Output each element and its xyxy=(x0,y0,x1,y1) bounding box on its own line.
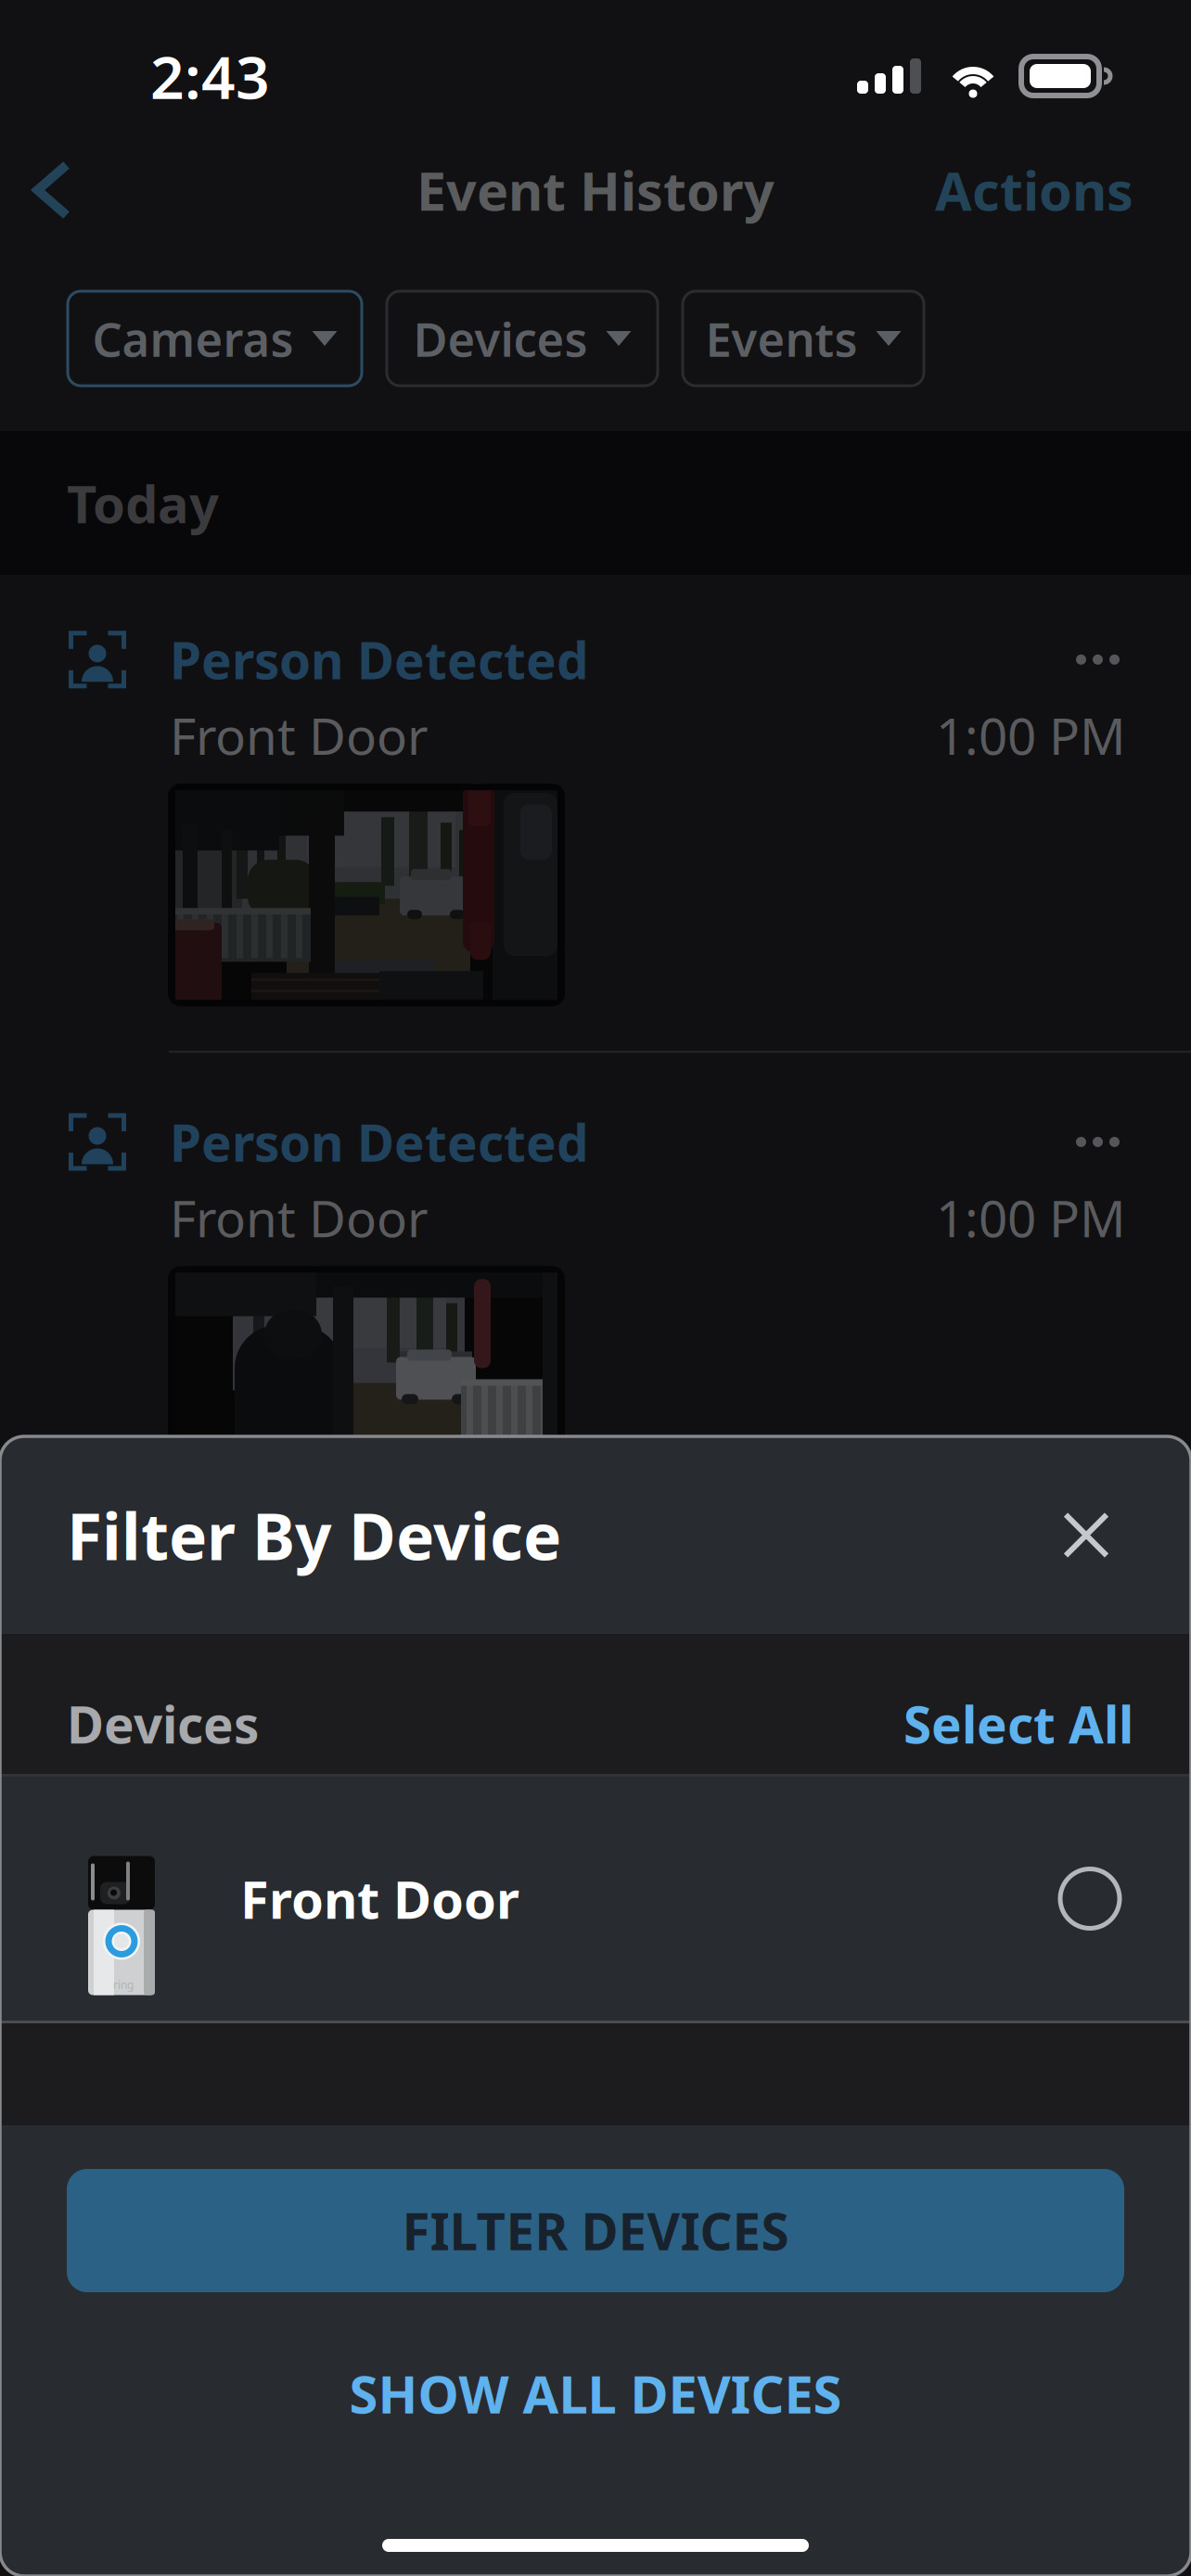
staticText: Today xyxy=(67,469,219,538)
staticText: Actions xyxy=(935,155,1133,225)
staticText: Devices xyxy=(67,1690,259,1757)
button[interactable]: SHOW ALL DEVICES xyxy=(349,2343,842,2443)
staticText: Filter By Device xyxy=(67,1492,561,1578)
staticText: Devices xyxy=(413,307,588,370)
staticText: Event History xyxy=(416,155,775,225)
staticText: Person Detected xyxy=(170,626,589,693)
staticText: Person Detected xyxy=(170,1108,589,1176)
staticText: 1:00 PM xyxy=(936,702,1126,769)
button[interactable]: Close xyxy=(1035,1484,1137,1586)
button[interactable]: Devices xyxy=(387,291,658,386)
staticText: Events xyxy=(705,307,858,370)
button[interactable]: FILTER DEVICES xyxy=(67,2169,1124,2292)
staticText: Select All xyxy=(903,1690,1133,1757)
staticText: ring xyxy=(113,1977,134,1992)
button[interactable]: Select All xyxy=(903,1690,1191,1757)
staticText: 2:43 xyxy=(150,37,270,115)
staticText: SHOW ALL DEVICES xyxy=(349,2359,842,2428)
button[interactable]: Back xyxy=(0,146,104,235)
button[interactable]: Cameras xyxy=(68,291,362,386)
staticText: Front Door xyxy=(170,1184,429,1251)
button[interactable]: ring xyxy=(0,1777,1191,2021)
button[interactable]: Actions xyxy=(935,155,1191,225)
staticText: Front Door xyxy=(170,702,429,769)
staticText: Cameras xyxy=(92,307,294,370)
staticText: FILTER DEVICES xyxy=(402,2197,789,2264)
staticText: 1:00 PM xyxy=(936,1184,1126,1251)
staticText: Front Door xyxy=(240,1864,519,1933)
button[interactable]: Events xyxy=(683,291,924,386)
